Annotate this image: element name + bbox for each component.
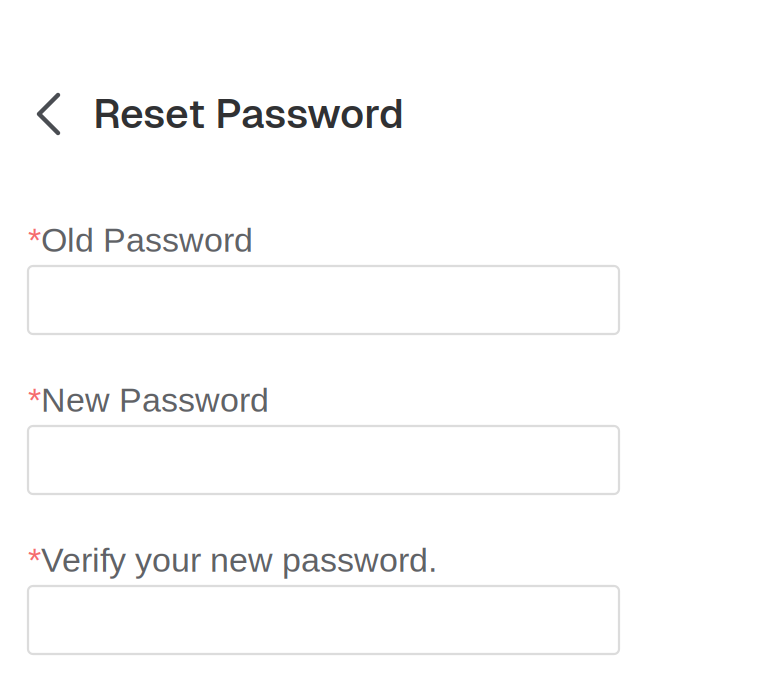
button[interactable] <box>28 426 619 494</box>
staticText: Reset Password <box>93 87 404 140</box>
button[interactable] <box>28 266 619 334</box>
staticText: New Password <box>41 381 269 419</box>
staticText: Verify your new password. <box>41 541 437 579</box>
staticText: * <box>28 381 41 419</box>
staticText: Old Password <box>41 221 253 259</box>
button[interactable] <box>28 586 619 654</box>
button[interactable]: Back <box>37 93 60 135</box>
staticText: * <box>28 221 41 259</box>
staticText: * <box>28 541 41 579</box>
